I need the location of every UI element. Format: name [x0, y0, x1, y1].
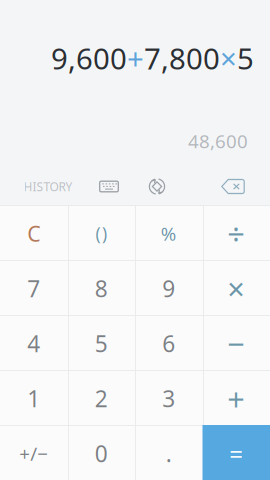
button[interactable]: . — [135, 425, 202, 480]
staticText: + — [227, 378, 245, 419]
staticText: = — [229, 438, 243, 469]
staticText: 3 — [162, 383, 175, 413]
button[interactable]: Keyboard — [83, 168, 135, 204]
staticText: 2 — [95, 383, 108, 413]
button[interactable]: = — [202, 425, 270, 480]
button[interactable]: HISTORY — [13, 168, 83, 204]
button[interactable]: 7 — [0, 260, 67, 315]
button[interactable]: +/− — [0, 425, 67, 480]
staticText: . — [166, 438, 172, 468]
button[interactable]: 2 — [67, 370, 135, 425]
staticText: ÷ — [227, 213, 245, 254]
staticText: C — [27, 219, 40, 248]
button[interactable]: 1 — [0, 370, 67, 425]
staticText: 9 — [162, 273, 175, 303]
button[interactable]: 8 — [67, 260, 135, 315]
staticText: + — [127, 38, 144, 77]
button[interactable]: + — [202, 370, 270, 425]
staticText: 8 — [95, 273, 108, 303]
staticText: % — [161, 221, 177, 246]
button[interactable]: − — [202, 315, 270, 370]
staticText: 0 — [95, 438, 108, 468]
button[interactable]: () — [67, 205, 135, 260]
button[interactable]: Delete — [210, 168, 256, 204]
button[interactable]: 3 — [135, 370, 202, 425]
button[interactable]: 9 — [135, 260, 202, 315]
staticText: 7,800 — [144, 38, 220, 77]
button[interactable]: 6 — [135, 315, 202, 370]
button[interactable]: Unit converter — [135, 168, 179, 204]
staticText: × — [220, 38, 237, 77]
staticText: +/− — [19, 441, 48, 466]
staticText: × — [227, 268, 245, 309]
button[interactable]: 0 — [67, 425, 135, 480]
button[interactable]: 5 — [67, 315, 135, 370]
button[interactable]: 4 — [0, 315, 67, 370]
staticText: − — [227, 323, 245, 364]
button[interactable]: × — [202, 260, 270, 315]
staticText: 4 — [27, 328, 40, 358]
staticText: () — [95, 222, 107, 245]
staticText: HISTORY — [23, 178, 72, 194]
staticText: 1 — [27, 383, 40, 413]
staticText: 5 — [237, 38, 254, 77]
staticText: 9,600 — [51, 38, 127, 77]
staticText: 6 — [162, 328, 175, 358]
staticText: 5 — [95, 328, 108, 358]
button[interactable]: C — [0, 205, 67, 260]
button[interactable]: % — [135, 205, 202, 260]
staticText: 7 — [27, 273, 40, 303]
staticText: 48,600 — [188, 129, 248, 153]
button[interactable]: ÷ — [202, 205, 270, 260]
